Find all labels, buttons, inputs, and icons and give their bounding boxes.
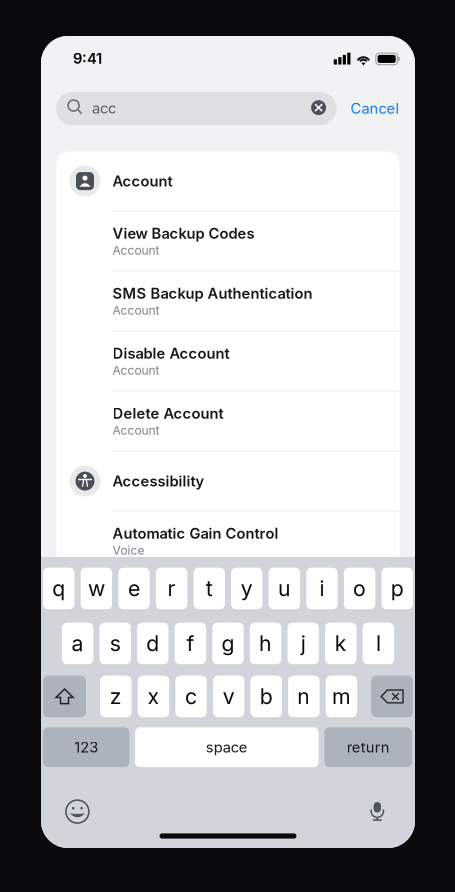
staticText: 9:41 bbox=[73, 50, 102, 67]
button[interactable]: e bbox=[118, 568, 150, 609]
staticText: f bbox=[186, 630, 194, 656]
staticText: Accessibility bbox=[112, 472, 204, 490]
button[interactable]: a bbox=[62, 623, 93, 664]
button[interactable]: q bbox=[43, 568, 74, 609]
staticText: Account bbox=[112, 303, 159, 318]
button[interactable]: p bbox=[381, 568, 413, 609]
staticText: q bbox=[52, 575, 65, 601]
staticText: n bbox=[297, 683, 310, 709]
button[interactable]: View Backup Codes bbox=[56, 211, 399, 271]
staticText: g bbox=[221, 630, 234, 656]
button[interactable]: u bbox=[269, 568, 300, 609]
staticText: Disable Account bbox=[112, 344, 229, 362]
button[interactable]: g bbox=[212, 623, 244, 664]
button[interactable]: r bbox=[156, 568, 187, 609]
button[interactable]: z bbox=[100, 676, 131, 717]
staticText: 123 bbox=[74, 738, 98, 756]
staticText: i bbox=[319, 575, 324, 601]
staticText: space bbox=[206, 738, 248, 756]
button[interactable]: v bbox=[213, 676, 244, 717]
button[interactable]: Dictation bbox=[367, 799, 388, 822]
staticText: o bbox=[353, 575, 366, 601]
staticText: r bbox=[168, 575, 176, 601]
staticText: t bbox=[206, 575, 213, 601]
staticText: w bbox=[88, 575, 105, 601]
button[interactable]: o bbox=[344, 568, 375, 609]
staticText: s bbox=[110, 630, 121, 656]
button[interactable]: s bbox=[99, 623, 131, 664]
button[interactable]: k bbox=[325, 623, 356, 664]
button[interactable]: l bbox=[363, 623, 394, 664]
staticText: b bbox=[260, 683, 273, 709]
staticText: acc bbox=[92, 99, 116, 117]
button[interactable]: space bbox=[135, 727, 319, 767]
button[interactable]: Cancel bbox=[350, 100, 399, 117]
button[interactable]: Account bbox=[56, 151, 399, 211]
button[interactable]: i bbox=[306, 568, 338, 609]
staticText: View Backup Codes bbox=[112, 224, 254, 242]
staticText: e bbox=[128, 575, 140, 601]
staticText: Account bbox=[112, 423, 159, 438]
button[interactable]: m bbox=[326, 676, 357, 717]
button[interactable]: y bbox=[231, 568, 262, 609]
staticText: Account bbox=[112, 243, 159, 258]
button[interactable]: Accessibility bbox=[56, 451, 399, 511]
staticText: x bbox=[147, 683, 159, 709]
staticText: z bbox=[110, 683, 122, 709]
staticText: Account bbox=[112, 363, 159, 378]
button[interactable]: Emoji keyboard bbox=[66, 800, 89, 823]
staticText: return bbox=[347, 738, 390, 756]
button[interactable]: Automatic Gain Control bbox=[56, 511, 399, 571]
staticText: v bbox=[223, 683, 235, 709]
staticText: y bbox=[241, 575, 253, 601]
staticText: j bbox=[301, 630, 306, 656]
button[interactable]: c bbox=[175, 676, 207, 717]
button[interactable]: n bbox=[288, 676, 319, 717]
button[interactable] bbox=[43, 676, 86, 717]
staticText: a bbox=[72, 630, 84, 656]
button[interactable]: x bbox=[138, 676, 169, 717]
button[interactable]: f bbox=[175, 623, 206, 664]
staticText: SMS Backup Authentication bbox=[112, 284, 312, 302]
staticText: Account bbox=[112, 172, 172, 190]
button[interactable]: j bbox=[287, 623, 319, 664]
button[interactable]: Disable Account bbox=[56, 331, 399, 391]
button[interactable]: SMS Backup Authentication bbox=[56, 271, 399, 331]
staticText: Cancel bbox=[350, 100, 399, 117]
staticText: m bbox=[332, 683, 351, 709]
staticText: k bbox=[335, 630, 347, 656]
staticText: h bbox=[259, 630, 272, 656]
staticText: Automatic Gain Control bbox=[112, 524, 278, 542]
staticText: p bbox=[391, 575, 404, 601]
button[interactable]: Delete Account bbox=[56, 391, 399, 451]
button[interactable]: b bbox=[250, 676, 282, 717]
staticText: c bbox=[185, 683, 197, 709]
button[interactable]: Clear text bbox=[311, 100, 326, 115]
staticText: Delete Account bbox=[112, 404, 223, 422]
button[interactable] bbox=[371, 676, 413, 717]
button[interactable]: w bbox=[81, 568, 112, 609]
button[interactable]: d bbox=[137, 623, 168, 664]
staticText: d bbox=[146, 630, 159, 656]
button[interactable]: 123 bbox=[43, 727, 129, 767]
staticText: u bbox=[278, 575, 291, 601]
staticText: Voice bbox=[112, 543, 144, 558]
button[interactable]: h bbox=[250, 623, 281, 664]
staticText: l bbox=[376, 630, 381, 656]
button[interactable]: return bbox=[324, 727, 412, 767]
button[interactable]: t bbox=[193, 568, 225, 609]
